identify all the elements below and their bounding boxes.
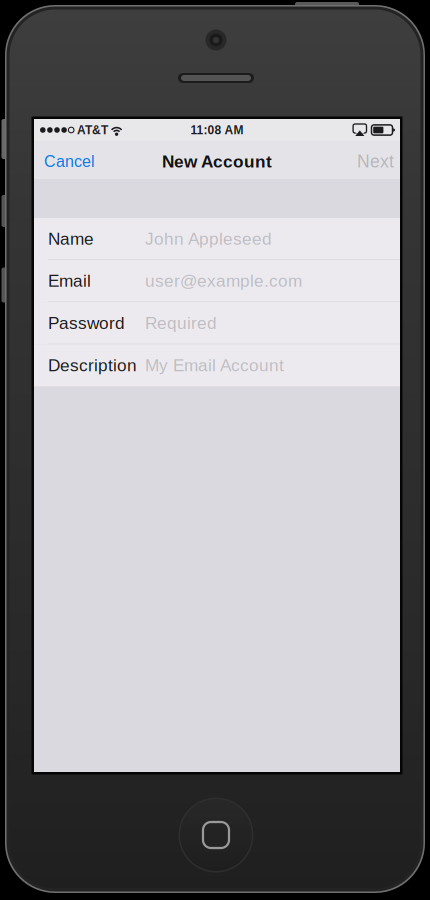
staticText: AT&T <box>77 123 108 137</box>
staticText: 11:08 AM <box>190 123 243 137</box>
staticText: Name <box>48 229 94 248</box>
staticText: Required <box>145 313 217 333</box>
staticText: Cancel <box>44 153 95 170</box>
staticText: My Email Account <box>145 356 284 375</box>
staticText: John Appleseed <box>145 229 272 248</box>
button[interactable]: Next <box>349 141 400 179</box>
staticText: Description <box>48 356 137 375</box>
staticText: Password <box>48 313 125 333</box>
staticText: user@example.com <box>145 271 302 290</box>
staticText: New Account <box>162 152 272 171</box>
staticText: Email <box>48 271 91 290</box>
staticText: Next <box>357 152 394 171</box>
button[interactable]: Cancel <box>34 141 103 179</box>
